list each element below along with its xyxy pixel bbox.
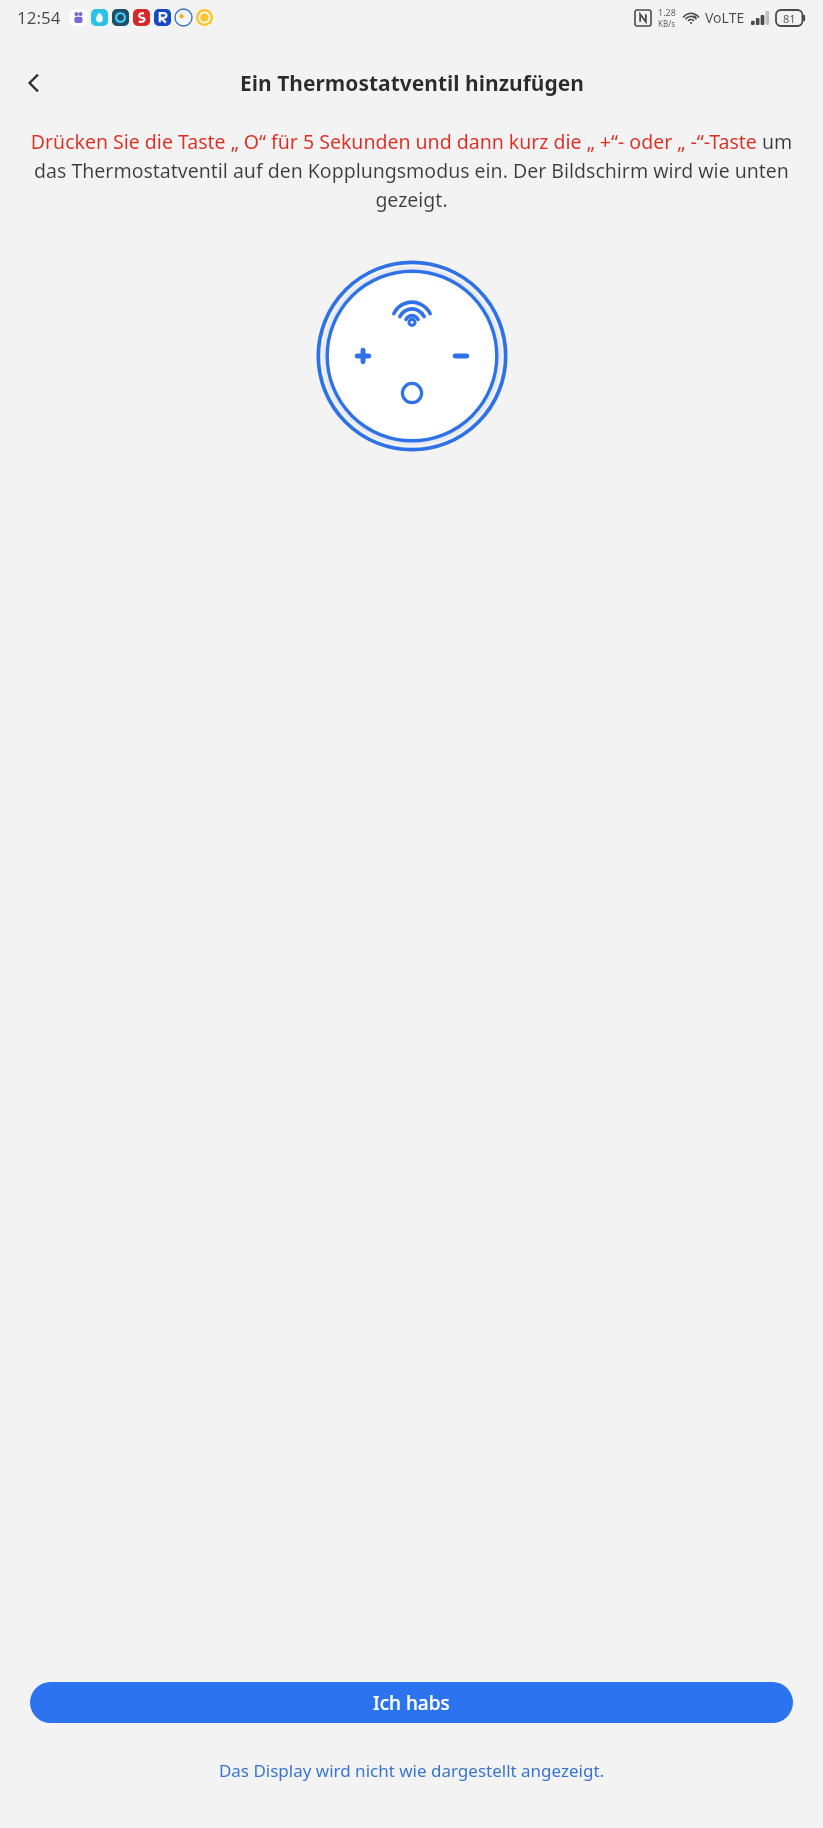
staticText: VoLTE bbox=[705, 8, 745, 27]
staticText: Ich habs bbox=[373, 1690, 450, 1716]
button[interactable]: Ich habs bbox=[30, 1682, 793, 1723]
button[interactable]: Back bbox=[10, 60, 58, 106]
staticText: 1.28 bbox=[658, 6, 676, 18]
staticText: Drücken Sie die Taste „ O“ für 5 Sekunde… bbox=[28, 128, 795, 212]
staticText: 12:54 bbox=[17, 6, 61, 29]
button[interactable]: Das Display wird nicht wie dargestellt a… bbox=[0, 1753, 823, 1788]
staticText: Ein Thermostatventil hinzufügen bbox=[240, 69, 584, 98]
staticText: 81 bbox=[783, 11, 796, 26]
staticText: KB/s bbox=[658, 18, 675, 29]
